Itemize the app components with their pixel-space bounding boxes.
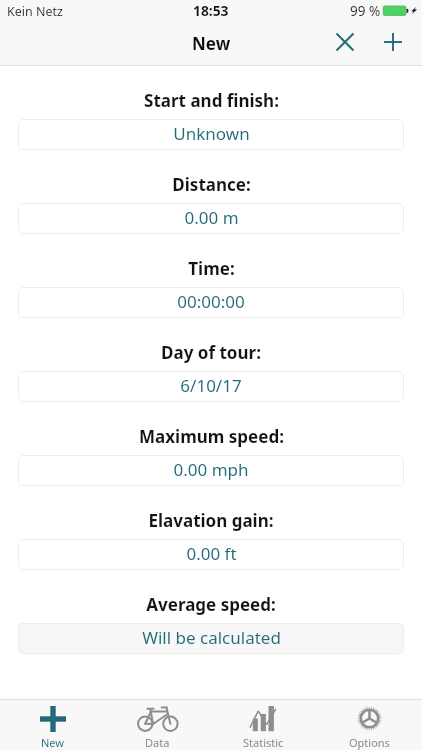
button[interactable]: Unknown — [18, 119, 404, 150]
button[interactable]: 6/10/17 — [18, 371, 404, 402]
button[interactable]: Data — [105, 700, 210, 750]
staticText: Day of tour: — [161, 341, 261, 363]
staticText: 99 % — [350, 2, 381, 20]
staticText: Data — [145, 735, 170, 750]
button[interactable]: Close — [322, 20, 367, 64]
staticText: Maximum speed: — [139, 425, 284, 447]
button[interactable]: Options — [316, 700, 422, 750]
staticText: Kein Netz — [7, 3, 63, 20]
staticText: Unknown — [173, 122, 250, 145]
staticText: Statistic — [243, 735, 284, 750]
button[interactable]: 0.00 ft — [18, 539, 404, 570]
staticText: 0.00 m — [184, 206, 239, 229]
staticText: Distance: — [172, 173, 251, 195]
staticText: New — [41, 735, 64, 750]
button[interactable]: 0.00 mph — [18, 455, 404, 486]
staticText: 00:00:00 — [177, 290, 245, 313]
staticText: Average speed: — [146, 593, 276, 615]
button[interactable]: Statistic — [210, 700, 316, 750]
staticText: Elavation gain: — [148, 509, 274, 531]
staticText: 18:53 — [193, 1, 229, 20]
button[interactable]: Will be calculated — [18, 623, 404, 654]
staticText: 6/10/17 — [180, 374, 242, 397]
button[interactable]: 0.00 m — [18, 203, 404, 234]
staticText: Options — [349, 735, 390, 750]
staticText: 0.00 ft — [186, 542, 237, 565]
button[interactable]: 00:00:00 — [18, 287, 404, 318]
staticText: New — [192, 32, 231, 55]
button[interactable]: Add — [370, 20, 415, 64]
staticText: Time: — [188, 257, 235, 279]
button[interactable]: New — [0, 700, 105, 750]
staticText: Start and finish: — [144, 89, 279, 111]
staticText: 0.00 mph — [173, 458, 249, 481]
staticText: Will be calculated — [142, 626, 281, 649]
